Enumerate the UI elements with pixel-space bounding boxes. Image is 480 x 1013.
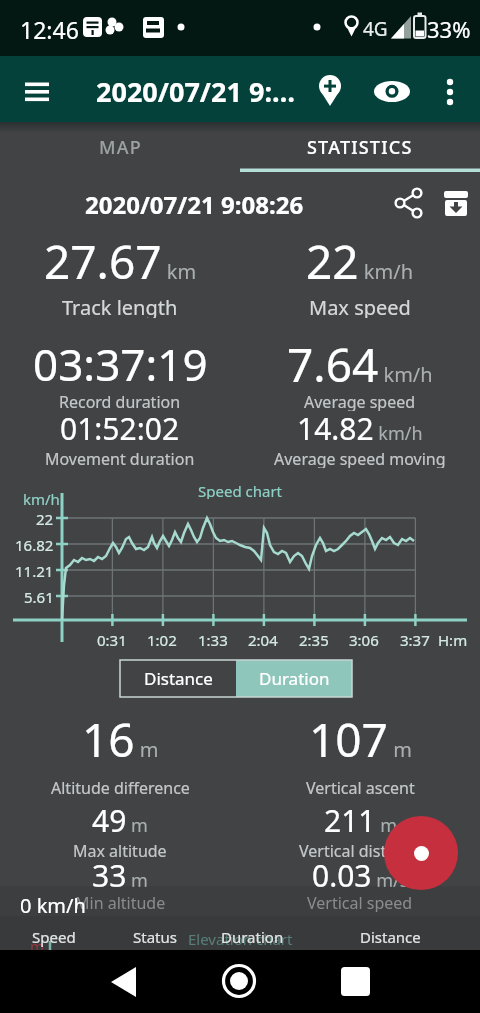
staticText: 03:37:19 [33,334,208,394]
staticText: 11.21 [15,561,54,579]
staticText: Vertical ascent [306,777,415,797]
staticText: 49 m [92,800,148,841]
button[interactable] [368,67,416,115]
staticText: Altitude difference [51,777,190,797]
staticText: Max altitude [73,840,167,860]
button[interactable]: STATISTICS [240,122,480,172]
staticText: 7.64 km/h [287,333,433,396]
staticText: 33% [427,14,471,40]
staticText: 12:46 [20,14,79,42]
staticText: 1:33 [198,630,228,650]
staticText: Vertical speed [307,892,413,912]
staticText: 1:02 [147,630,177,650]
staticText: 16.82 [15,535,54,553]
staticText: H:m [438,630,468,650]
staticText: 22 [36,509,54,527]
button[interactable] [386,181,432,227]
button[interactable] [206,950,274,1013]
button[interactable]: MAP [0,122,240,172]
staticText: Max speed [309,294,411,318]
staticText: 0 km/h [20,892,86,916]
staticText: m [30,936,45,954]
staticText: km/h [23,489,60,507]
button[interactable] [90,950,158,1013]
button[interactable]: Duration [236,660,352,697]
staticText: 33 m [92,855,148,896]
staticText: 2020/07/21 9:… [96,73,296,110]
staticText: 27.67 km [44,230,197,293]
staticText: Record duration [59,391,181,411]
staticText: 211 m [324,800,397,841]
staticText: Min altitude [75,892,166,912]
staticText: Vertical distance [299,840,422,860]
staticText: Speed [32,927,76,947]
staticText: Speed chart [198,481,283,499]
button[interactable] [306,67,354,115]
staticText: Average speed [304,391,416,411]
staticText: 4G [363,16,388,38]
staticText: 5.61 [24,587,54,605]
staticText: Status [133,927,177,947]
staticText: Distance [360,927,421,947]
staticText: Movement duration [45,448,195,468]
staticText: 3:37 [400,630,430,650]
staticText: STATISTICS [307,135,413,160]
button[interactable] [430,67,474,115]
staticText: 22 km/h [306,230,414,293]
staticText: Elevation chart [188,929,293,949]
staticText: MAP [99,135,142,160]
staticText: 14.82 km/h [297,408,423,449]
staticText: Average speed moving [274,448,446,468]
button[interactable] [434,181,478,227]
staticText: 107 m [309,708,412,771]
staticText: 2:04 [248,630,278,650]
staticText: 01:52:02 [60,408,180,449]
button[interactable]: Distance [120,660,236,697]
staticText: 0.03 m/s [312,855,409,896]
staticText: 2:35 [299,630,329,650]
staticText: 16 m [82,708,159,771]
staticText: 2020/07/21 9:08:26 [85,188,304,221]
staticText: Distance [144,667,213,690]
button[interactable] [322,950,390,1013]
staticText: Track length [62,294,178,318]
staticText: 3:06 [349,630,379,650]
staticText: 0:31 [97,630,127,650]
staticText: Duration [221,927,284,947]
button[interactable] [384,816,458,890]
button[interactable] [13,67,61,115]
staticText: Duration [259,667,330,690]
